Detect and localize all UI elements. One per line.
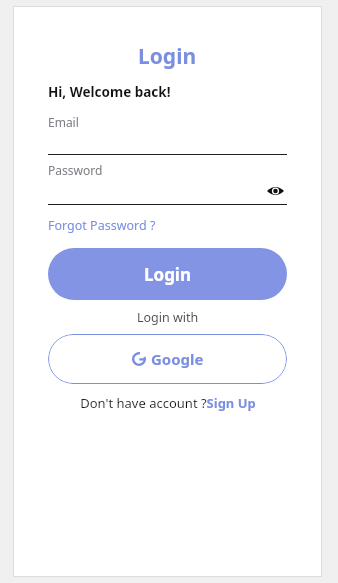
staticText: Google: [151, 349, 204, 369]
staticText: Email: [48, 114, 79, 130]
staticText: Login: [144, 263, 192, 286]
button[interactable]: Show password: [263, 179, 287, 203]
staticText: Hi, Welcome back!: [48, 83, 171, 101]
staticText: Password: [48, 162, 103, 178]
staticText: Login: [138, 42, 197, 71]
button[interactable]: Don't have account ?Sign Up: [80, 394, 256, 412]
staticText: Login with: [137, 309, 199, 326]
staticText: Don't have account ?Sign Up: [80, 394, 256, 412]
button[interactable]: Forgot Password ?: [48, 217, 156, 234]
staticText: Forgot Password ?: [48, 217, 156, 234]
button[interactable]: Google: [48, 334, 287, 384]
button[interactable]: Login: [48, 248, 287, 300]
